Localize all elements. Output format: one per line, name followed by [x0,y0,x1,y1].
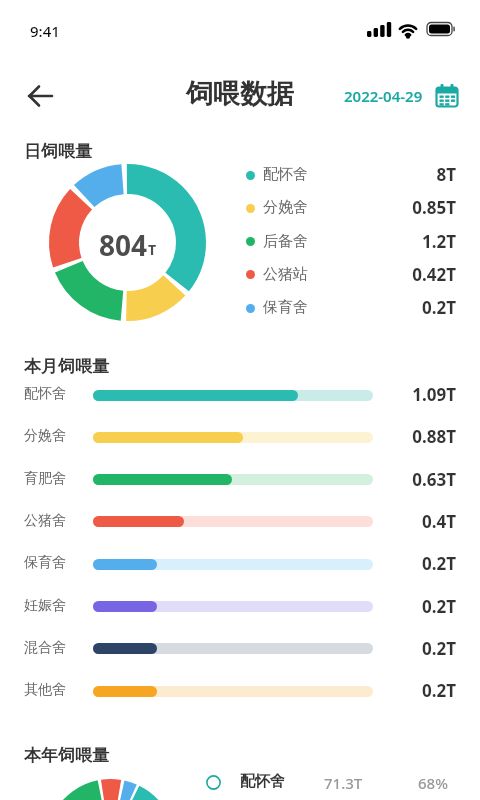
staticText: 保育舍 [24,554,66,572]
staticText: 2022-04-29 [344,86,423,106]
staticText: 日饲喂量 [24,141,92,162]
staticText: T [148,240,157,259]
staticText: 0.2T [356,679,456,702]
staticText: 配怀舍 [240,772,285,791]
staticText: 后备舍 [263,232,308,251]
staticText: 0.2T [356,296,456,319]
staticText: 分娩舍 [263,198,308,217]
staticText: 1.2T [356,230,456,253]
staticText: 1.09T [356,383,456,406]
staticText: 0.2T [356,552,456,575]
staticText: 0.88T [356,425,456,448]
staticText: 保育舍 [263,298,308,317]
button[interactable]: 2022-04-29 [344,78,459,114]
staticText: 分娩舍 [24,427,66,445]
staticText: 0.2T [356,595,456,618]
staticText: 0.2T [356,637,456,660]
staticText: 8T [356,163,456,186]
staticText: 公猪舍 [24,512,66,530]
staticText: 804 [99,226,148,264]
staticText: 本年饲喂量 [24,745,109,766]
staticText: 配怀舍 [263,165,308,184]
staticText: 0.4T [356,510,456,533]
staticText: 本月饲喂量 [24,356,109,377]
staticText: 公猪站 [263,265,308,284]
staticText: 混合舍 [24,639,66,657]
staticText: 71.3T [324,773,363,793]
staticText: 配怀舍 [24,385,66,403]
staticText: 9:41 [30,21,60,41]
staticText: 育肥舍 [24,470,66,488]
staticText: 0.63T [356,468,456,491]
staticText: 0.42T [356,263,456,286]
staticText: 0.85T [356,196,456,219]
staticText: 68% [418,773,448,793]
button[interactable] [20,78,60,114]
staticText: 其他舍 [24,681,66,699]
staticText: 饲喂数据 [0,77,480,111]
staticText: 妊娠舍 [24,597,66,615]
